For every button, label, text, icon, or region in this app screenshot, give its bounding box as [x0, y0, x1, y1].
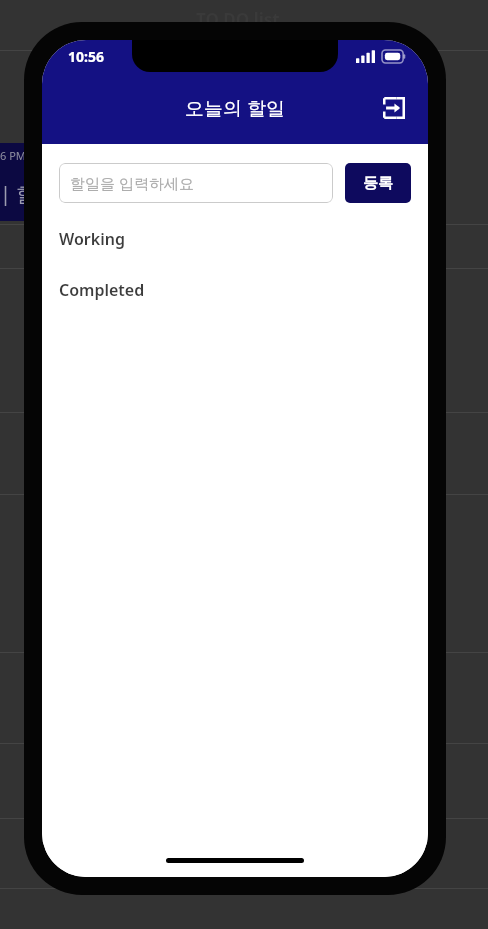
staticText: TO DO list	[196, 8, 280, 31]
staticText: 6 PM	[0, 148, 26, 163]
staticText: 오늘의 할일	[185, 95, 285, 121]
button[interactable]: Logout	[374, 88, 414, 128]
staticText: 할일을 입력하세요	[70, 173, 194, 193]
button[interactable]: 할일을 입력하세요	[59, 163, 333, 203]
staticText: Working	[59, 228, 125, 250]
button[interactable]: 등록	[345, 163, 411, 203]
staticText: Completed	[59, 279, 145, 301]
staticText: | 할	[0, 180, 37, 207]
staticText: 10:56	[68, 47, 104, 66]
staticText: 등록	[363, 174, 393, 193]
